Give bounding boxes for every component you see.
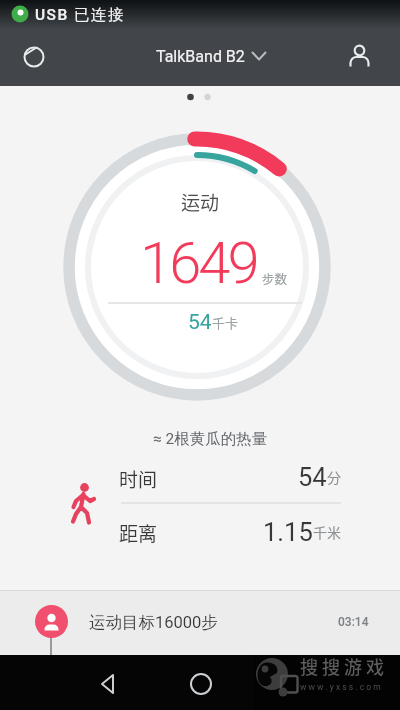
button[interactable] [96,672,120,696]
button[interactable] [189,672,213,696]
button[interactable] [0,590,400,655]
staticText: ≈ 2根黄瓜的热量 [153,429,268,449]
staticText: TalkBand B2 [156,47,245,66]
staticText: 03:14 [338,615,369,629]
staticText: w w w . y x s s . c o m [300,682,381,692]
staticText: 步数 [262,269,288,287]
staticText: 时间 [119,465,158,493]
staticText: 千米 [313,522,341,542]
button[interactable] [347,44,371,68]
staticText: 1649 [140,229,257,297]
button[interactable] [0,28,400,86]
staticText: 1.15 [263,517,313,547]
staticText: 搜搜游戏 [300,653,388,679]
button[interactable] [21,43,47,69]
staticText: 54 [188,310,212,335]
staticText: 分 [327,467,341,487]
staticText: 运动目标16000步 [89,612,218,633]
staticText: 运动 [181,188,220,216]
staticText: 距离 [119,519,158,547]
staticText: 54 [298,462,327,492]
staticText: USB 已连接 [35,5,126,25]
staticText: 千卡 [212,313,239,332]
